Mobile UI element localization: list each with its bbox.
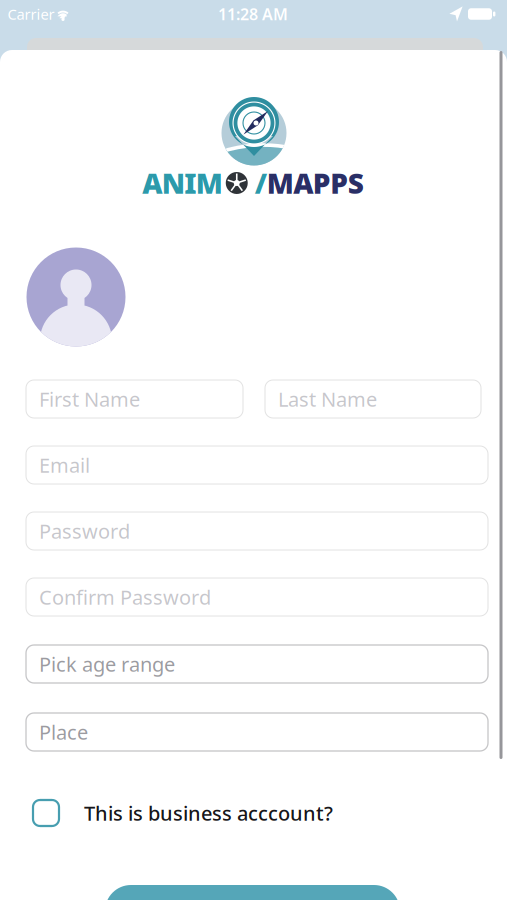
button[interactable]: First Name bbox=[26, 380, 243, 418]
button[interactable]: Confirm Password bbox=[26, 578, 488, 616]
staticText: Place bbox=[39, 719, 88, 745]
button[interactable]: Sign Up bbox=[105, 885, 400, 900]
staticText: Confirm Password bbox=[39, 584, 211, 610]
staticText: This is business acccount? bbox=[84, 800, 333, 826]
button[interactable]: Place bbox=[26, 713, 488, 751]
button[interactable]: Password bbox=[26, 512, 488, 550]
staticText: / bbox=[255, 164, 267, 202]
staticText: Carrier bbox=[7, 4, 54, 24]
staticText: Password bbox=[39, 518, 130, 544]
staticText: 11:28 AM bbox=[218, 3, 288, 25]
button[interactable]: Email bbox=[26, 446, 488, 484]
button[interactable]: This is business acccount? bbox=[33, 796, 507, 830]
staticText: ANIM bbox=[142, 164, 223, 202]
staticText: MAPPS bbox=[267, 164, 364, 202]
button[interactable]: Pick age range bbox=[26, 645, 488, 683]
staticText: Last Name bbox=[278, 386, 377, 412]
staticText: Pick age range bbox=[39, 651, 175, 677]
staticText: First Name bbox=[39, 386, 140, 412]
staticText: Email bbox=[39, 452, 90, 478]
button[interactable]: Last Name bbox=[265, 380, 481, 418]
button[interactable]: Add profile photo bbox=[26, 247, 125, 346]
